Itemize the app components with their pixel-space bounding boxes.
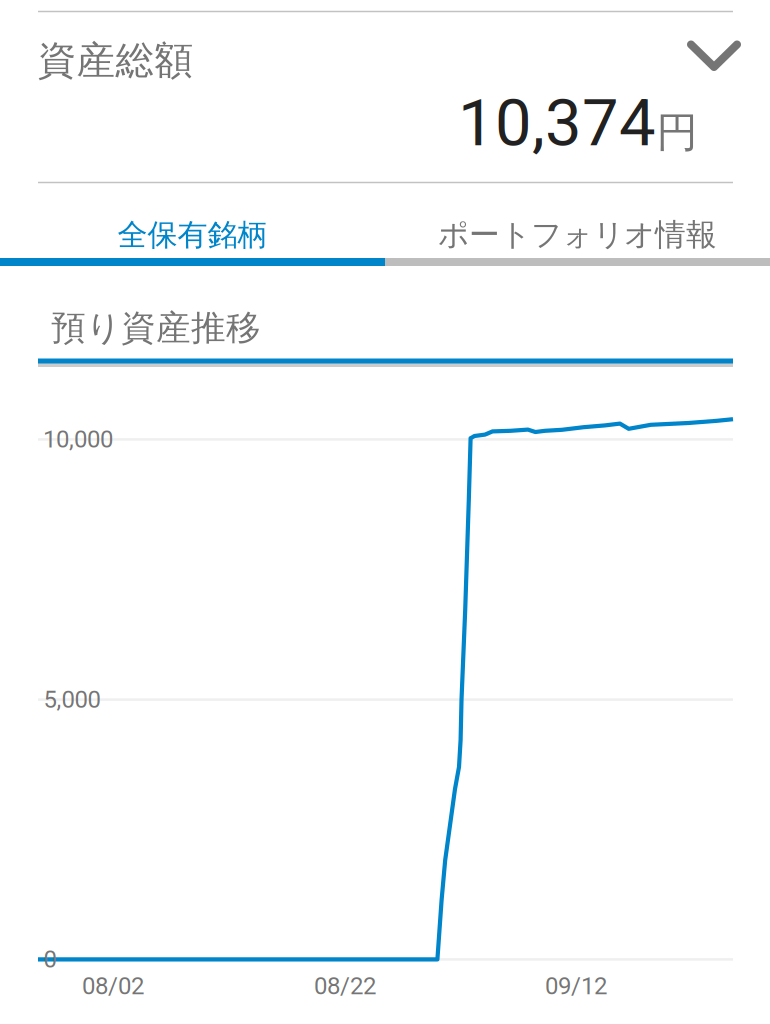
- staticText: 預り資産推移: [51, 306, 261, 350]
- button[interactable]: 資産総額: [0, 0, 770, 182]
- button[interactable]: ポートフォリオ情報: [385, 183, 770, 266]
- staticText: 5,000: [43, 685, 100, 714]
- staticText: 全保有銘柄: [117, 216, 267, 254]
- staticText: 10,000: [43, 425, 113, 453]
- staticText: ポートフォリオ情報: [438, 215, 717, 254]
- staticText: 08/02: [82, 972, 144, 1000]
- staticText: 08/22: [314, 972, 376, 1000]
- staticText: 円: [656, 106, 697, 159]
- button[interactable]: 全保有銘柄: [0, 183, 385, 266]
- staticText: 資産総額: [37, 36, 193, 85]
- staticText: 10,374: [458, 85, 656, 161]
- staticText: 09/12: [545, 972, 607, 1000]
- staticText: 0: [43, 945, 56, 973]
